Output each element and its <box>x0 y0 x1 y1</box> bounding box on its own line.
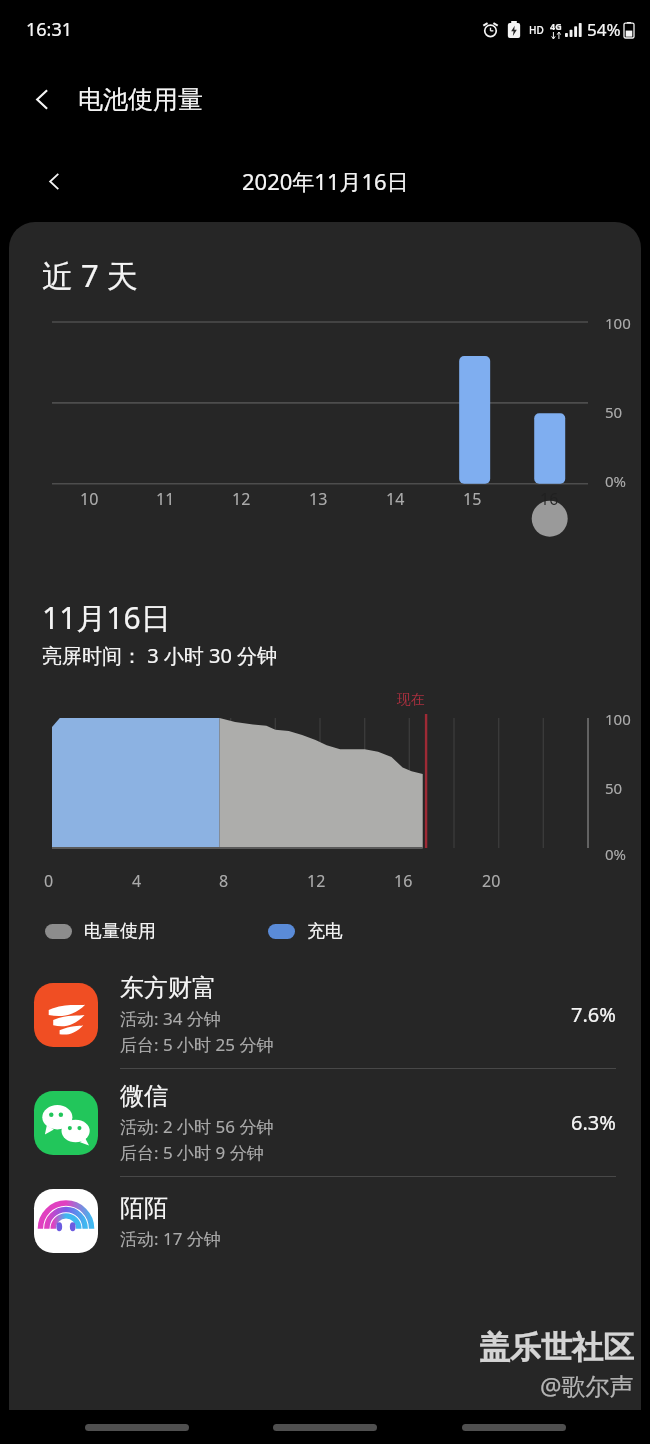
staticText: 50 <box>605 778 623 798</box>
staticText: 微信 <box>120 1081 168 1111</box>
staticText: 陌陌 <box>120 1193 168 1223</box>
staticText: 4G <box>550 20 562 32</box>
staticText: 14 <box>386 488 405 510</box>
staticText: 2020年11月16日 <box>242 166 409 196</box>
staticText: 盖乐世社区 <box>479 1328 634 1367</box>
staticText: 100 <box>605 313 631 333</box>
staticText: 亮屏时间： 3 小时 30 分钟 <box>42 642 278 669</box>
staticText: 后台: 5 小时 25 分钟 <box>120 1033 274 1056</box>
staticText: 电量使用 <box>84 920 156 943</box>
button[interactable]: 陌陌 <box>9 1177 641 1265</box>
staticText: 11月16日 <box>42 597 171 638</box>
staticText: 8 <box>219 870 229 892</box>
staticText: 15 <box>463 488 482 510</box>
staticText: 充电 <box>307 920 343 943</box>
staticText: 11 <box>156 488 175 510</box>
staticText: 16:31 <box>26 17 73 42</box>
staticText: 0% <box>605 844 627 864</box>
button[interactable]: Navigation <box>85 1424 189 1431</box>
button[interactable]: 微信 <box>9 1069 641 1177</box>
staticText: 活动: 34 分钟 <box>120 1007 221 1030</box>
button[interactable]: Navigation <box>462 1424 566 1431</box>
button[interactable]: Previous day <box>30 157 78 205</box>
staticText: 13 <box>309 488 328 510</box>
staticText: 16 <box>540 488 559 510</box>
staticText: 54% <box>587 18 621 41</box>
staticText: 100 <box>605 709 631 729</box>
button[interactable]: Back <box>14 71 70 127</box>
staticText: 12 <box>232 488 251 510</box>
button[interactable]: 东方财富 <box>9 961 641 1069</box>
staticText: @歌尔声 <box>540 1369 634 1402</box>
staticText: 20 <box>482 870 501 892</box>
staticText: 后台: 5 小时 9 分钟 <box>120 1141 264 1164</box>
staticText: 4 <box>132 870 142 892</box>
staticText: 10 <box>80 488 99 510</box>
button[interactable]: Navigation <box>273 1424 377 1431</box>
staticText: 活动: 17 分钟 <box>120 1227 221 1250</box>
staticText: 近 7 天 <box>42 254 138 296</box>
staticText: 电池使用量 <box>78 84 203 115</box>
staticText: 6.3% <box>571 1109 616 1136</box>
staticText: 0 <box>44 870 54 892</box>
staticText: 0% <box>605 471 627 491</box>
staticText: 活动: 2 小时 56 分钟 <box>120 1115 274 1138</box>
staticText: 7.6% <box>571 1001 616 1028</box>
staticText: 东方财富 <box>120 973 216 1003</box>
staticText: 现在 <box>397 691 425 709</box>
staticText: 16 <box>394 870 413 892</box>
staticText: 12 <box>307 870 326 892</box>
staticText: 50 <box>605 402 623 422</box>
staticText: HD <box>529 23 544 37</box>
